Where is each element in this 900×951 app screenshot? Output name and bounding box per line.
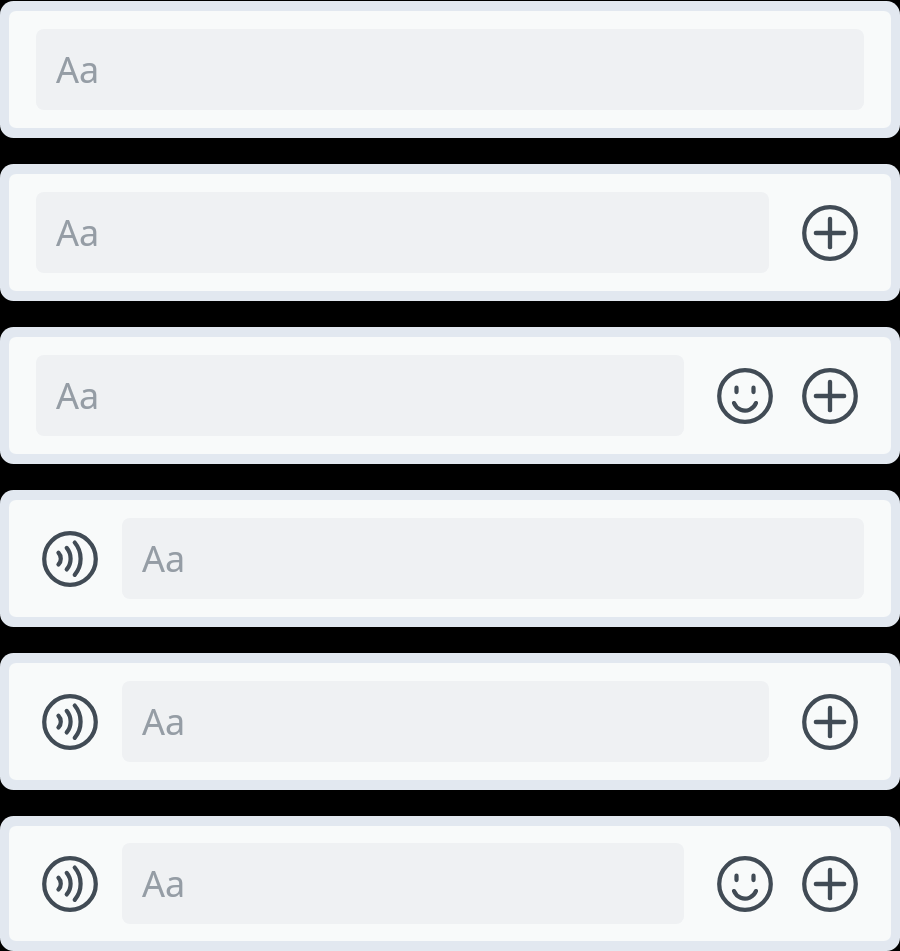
button[interactable]: Add attachment	[796, 362, 864, 430]
button[interactable]: Aa	[36, 29, 864, 110]
button[interactable]: Voice message	[36, 850, 104, 918]
button[interactable]: Add attachment	[796, 688, 864, 756]
staticText: Aa	[56, 208, 100, 257]
staticText: Aa	[142, 534, 186, 583]
button[interactable]: Aa	[122, 518, 864, 599]
button[interactable]: Aa	[36, 355, 684, 436]
button[interactable]: Voice message	[36, 688, 104, 756]
button[interactable]: Aa	[122, 681, 769, 762]
button[interactable]: Emoji	[711, 362, 779, 430]
button[interactable]: Emoji	[711, 850, 779, 918]
button[interactable]: Add attachment	[796, 850, 864, 918]
staticText: Aa	[56, 371, 100, 420]
staticText: Aa	[56, 45, 100, 94]
button[interactable]: Aa	[36, 192, 769, 273]
staticText: Aa	[142, 859, 186, 908]
button[interactable]: Add attachment	[796, 199, 864, 267]
staticText: Aa	[142, 697, 186, 746]
button[interactable]: Voice message	[36, 525, 104, 593]
button[interactable]: Aa	[122, 843, 684, 924]
